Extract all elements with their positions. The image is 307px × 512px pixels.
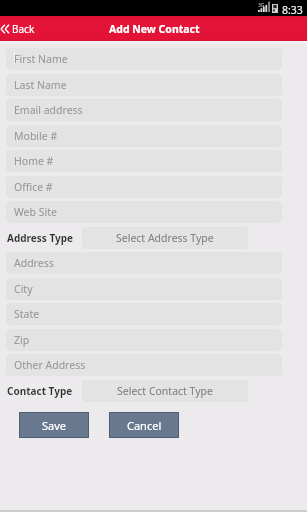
- staticText: Web Site: [14, 205, 57, 219]
- staticText: 8:33: [282, 3, 303, 17]
- staticText: Cancel: [127, 418, 162, 433]
- staticText: Email address: [14, 103, 83, 117]
- button[interactable]: Last Name: [6, 74, 282, 96]
- staticText: Address Type: [7, 231, 74, 245]
- button[interactable]: Select Contact Type: [82, 380, 248, 402]
- staticText: Back: [12, 22, 35, 36]
- staticText: Contact Type: [7, 384, 73, 398]
- staticText: Select Contact Type: [117, 384, 213, 398]
- staticText: Other Address: [14, 358, 86, 372]
- button[interactable]: Mobile #: [6, 125, 282, 147]
- staticText: Office #: [14, 180, 53, 194]
- button[interactable]: Back: [0, 18, 43, 40]
- button[interactable]: Other Address: [6, 354, 282, 376]
- staticText: Last Name: [14, 78, 67, 92]
- staticText: 3G: [258, 2, 265, 9]
- button[interactable]: Office #: [6, 176, 282, 198]
- button[interactable]: State: [6, 303, 282, 325]
- other: Mobile signal strength: [258, 5, 270, 12]
- button[interactable]: Save: [20, 413, 88, 437]
- button[interactable]: Home #: [6, 150, 282, 172]
- staticText: Mobile #: [14, 129, 58, 143]
- button[interactable]: Email address: [6, 99, 282, 121]
- button[interactable]: Web Site: [6, 201, 282, 223]
- staticText: State: [14, 307, 40, 321]
- button[interactable]: City: [6, 278, 282, 300]
- button[interactable]: Cancel: [110, 413, 178, 437]
- staticText: Address: [14, 256, 54, 270]
- staticText: City: [14, 282, 33, 296]
- button[interactable]: Zip: [6, 329, 282, 351]
- button[interactable]: Address: [6, 252, 282, 274]
- button[interactable]: Select Address Type: [82, 227, 248, 249]
- other: Storage: [272, 4, 278, 13]
- staticText: Home #: [14, 154, 54, 168]
- staticText: Save: [42, 418, 67, 433]
- button[interactable]: First Name: [6, 48, 282, 70]
- staticText: Select Address Type: [116, 231, 214, 245]
- staticText: Zip: [14, 333, 30, 347]
- staticText: First Name: [14, 52, 68, 66]
- staticText: Add New Contact: [109, 22, 200, 36]
